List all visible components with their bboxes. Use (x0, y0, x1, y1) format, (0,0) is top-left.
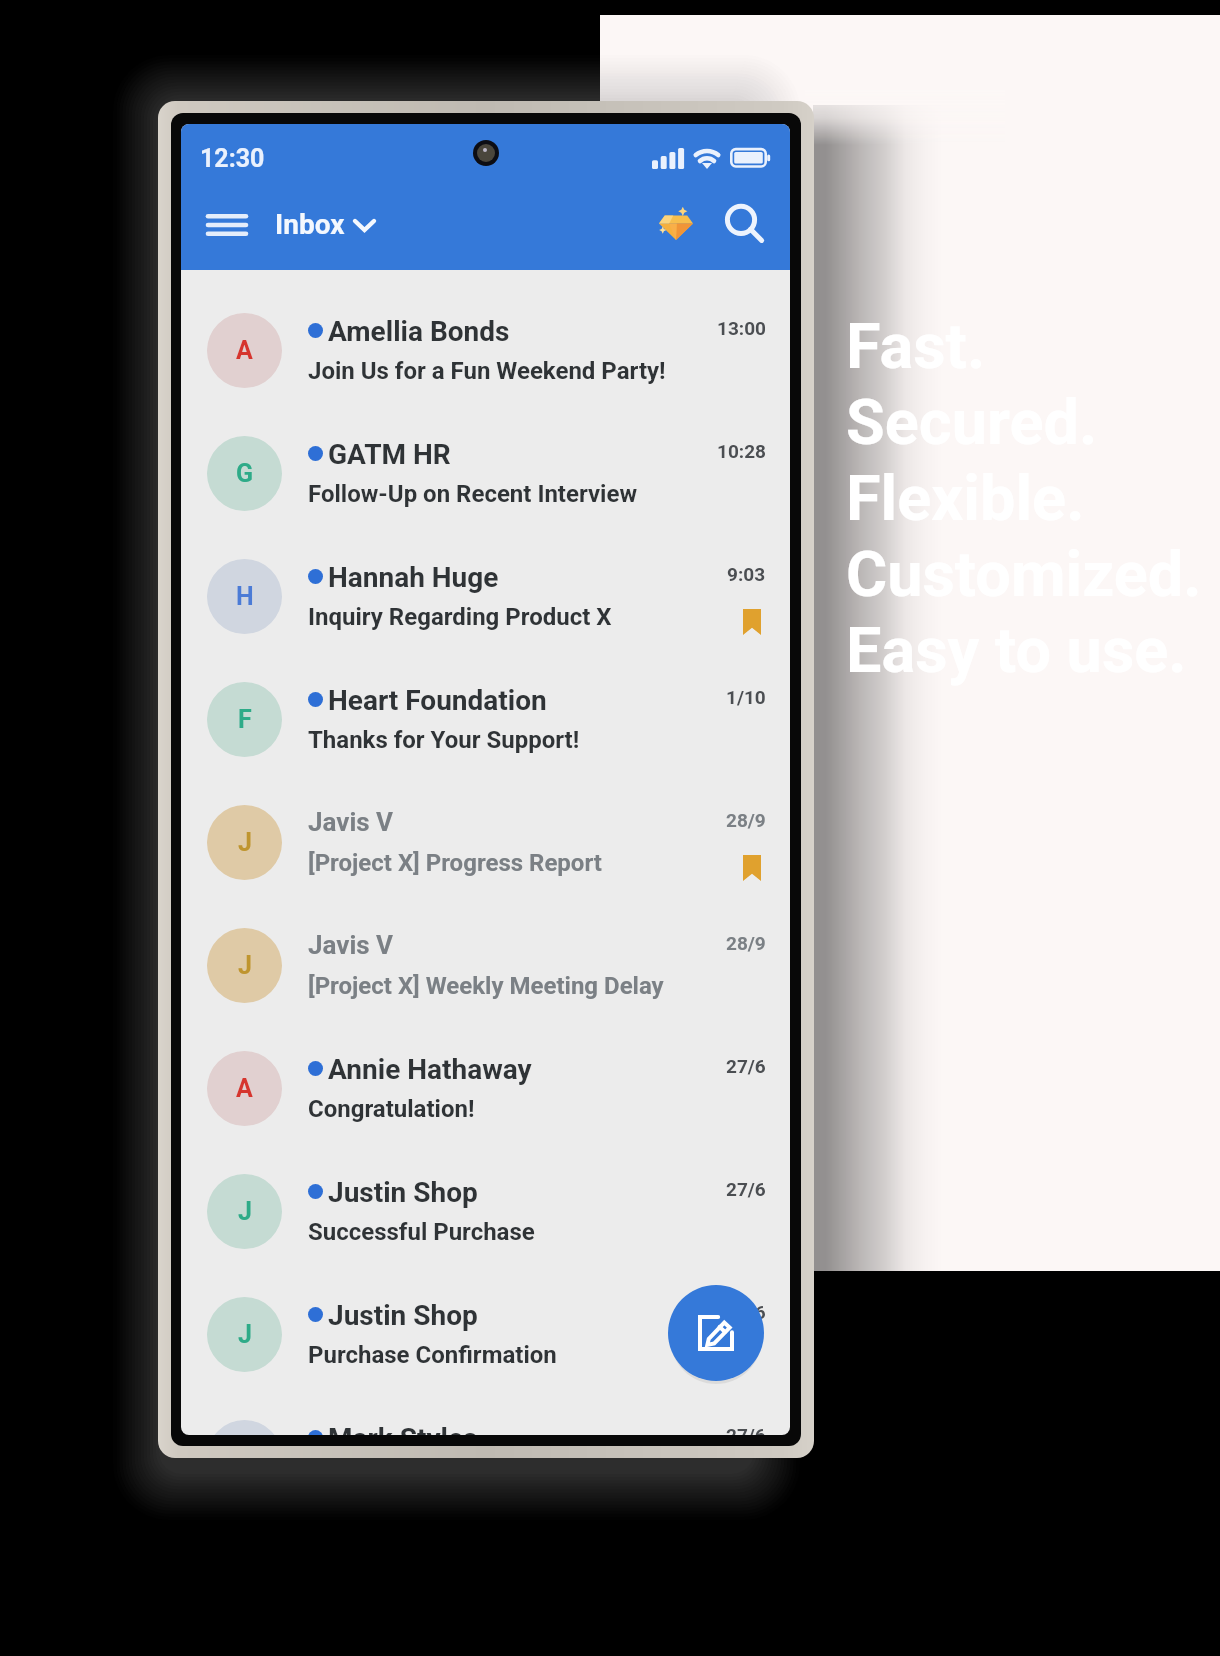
staticText: Congratulation! (308, 1095, 475, 1123)
staticText: Javis V (308, 807, 394, 837)
button[interactable]: G (181, 437, 790, 560)
button[interactable]: J (181, 1175, 790, 1298)
staticText: Inquiry Regarding Product X (308, 603, 612, 631)
staticText: Flexible. (846, 462, 1085, 536)
staticText: F (238, 705, 252, 734)
staticText: 27/6 (726, 1178, 766, 1200)
staticText: Annie Hathaway (328, 1053, 532, 1086)
button[interactable]: J (181, 806, 790, 929)
staticText: A (236, 1074, 253, 1103)
staticText: Hannah Huge (328, 561, 499, 594)
staticText: Inbox (275, 208, 345, 241)
button[interactable]: Search (715, 195, 771, 251)
staticText: Heart Foundation (328, 684, 547, 717)
staticText: 28/9 (726, 809, 766, 831)
staticText: 10:28 (717, 440, 766, 462)
button[interactable]: Compose new message (668, 1285, 764, 1381)
button[interactable]: J (181, 929, 790, 1052)
staticText: Justin Shop (328, 1299, 478, 1332)
staticText: Justin Shop (328, 1176, 478, 1209)
button[interactable]: J (181, 1298, 790, 1421)
staticText: [Project X] Weekly Meeting Delay (308, 972, 664, 1000)
staticText: 13:00 (717, 317, 766, 339)
staticText: H (236, 582, 254, 611)
staticText: 28/9 (726, 932, 766, 954)
staticText: Follow-Up on Recent Interview (308, 480, 638, 508)
staticText: Thanks for Your Support! (308, 726, 580, 754)
staticText: G (236, 459, 254, 488)
staticText: A (236, 336, 253, 365)
staticText: Easy to use. (846, 614, 1187, 688)
staticText: Javis V (308, 930, 394, 960)
button[interactable]: Open navigation menu (194, 201, 259, 248)
staticText: 27/6 (726, 1055, 766, 1077)
button[interactable]: M (181, 1421, 790, 1435)
staticText: Secured. (846, 386, 1098, 460)
staticText: Purchase Confirmation (308, 1341, 557, 1369)
staticText: Join Us for a Fun Weekend Party! (308, 357, 666, 385)
button[interactable]: Premium features (648, 195, 704, 251)
staticText: 27/6 (726, 1424, 766, 1435)
staticText: 1/10 (726, 686, 766, 708)
button[interactable]: A (181, 314, 790, 437)
button[interactable]: Inbox (269, 200, 381, 248)
staticText: Customized. (846, 538, 1202, 612)
staticText: Fast. (846, 310, 986, 384)
staticText: 9:03 (727, 563, 766, 585)
staticText: Amellia Bonds (328, 315, 510, 348)
staticText: J (238, 828, 252, 857)
staticText: J (238, 951, 252, 980)
button[interactable]: H (181, 560, 790, 683)
staticText: [Project X] Progress Report (308, 849, 602, 877)
button[interactable]: A (181, 1052, 790, 1175)
button[interactable]: F (181, 683, 790, 806)
staticText: J (238, 1320, 252, 1349)
staticText: 27/6 (726, 1301, 766, 1323)
staticText: Successful Purchase (308, 1218, 535, 1246)
staticText: GATM HR (328, 438, 451, 471)
staticText: 12:30 (200, 144, 265, 173)
staticText: J (238, 1197, 252, 1226)
staticText: Mark Styles (328, 1422, 478, 1435)
